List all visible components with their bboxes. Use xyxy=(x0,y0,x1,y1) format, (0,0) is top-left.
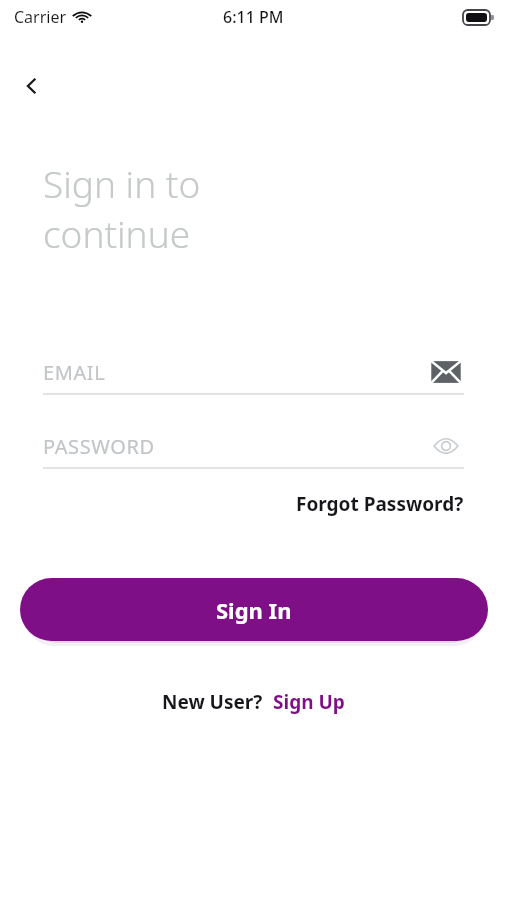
button[interactable]: Forgot Password? xyxy=(296,487,464,521)
staticText: Sign In xyxy=(216,595,292,625)
staticText: continue xyxy=(43,208,191,258)
button[interactable]: EMAIL xyxy=(43,351,464,393)
staticText: PASSWORD xyxy=(43,433,155,460)
button[interactable]: Sign Up xyxy=(273,686,345,718)
button[interactable]: PASSWORD xyxy=(43,425,464,467)
button[interactable]: Sign In xyxy=(20,578,488,641)
button[interactable]: Show password xyxy=(428,428,464,464)
button[interactable]: Email xyxy=(428,354,464,390)
staticText: Sign in to xyxy=(43,158,201,208)
staticText: New User? xyxy=(162,689,263,715)
staticText: 6:11 PM xyxy=(223,6,284,28)
button[interactable]: Back xyxy=(8,62,56,110)
staticText: Forgot Password? xyxy=(296,491,464,517)
staticText: Carrier xyxy=(14,6,67,28)
staticText: Sign Up xyxy=(273,689,345,715)
staticText: EMAIL xyxy=(43,359,106,386)
